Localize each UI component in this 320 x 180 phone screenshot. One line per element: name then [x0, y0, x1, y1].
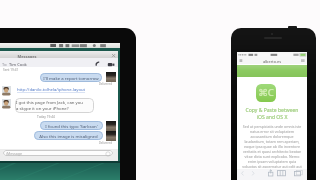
- staticText: Today 19:44: [31, 115, 61, 121]
- staticText: http://danilo.tolhela/iphone-layout: [17, 87, 91, 93]
- staticText: ⌘C: [256, 86, 276, 98]
- staticText: alberto.es: [252, 59, 292, 67]
- staticText: To:: [2, 62, 10, 70]
- button[interactable]: [3, 150, 113, 156]
- staticText: Delivered: [96, 141, 112, 147]
- button[interactable]: [40, 121, 103, 130]
- staticText: Copy & Paste between iOS and OS X: [241, 107, 303, 122]
- staticText: Sed ut perspiciatis unde omnis iste natu…: [241, 124, 303, 168]
- button[interactable]: [15, 98, 94, 113]
- staticText: Messages: [11, 54, 43, 62]
- button[interactable]: [40, 73, 102, 82]
- button[interactable]: [34, 131, 103, 140]
- other: Reload page: [237, 58, 307, 63]
- staticText: Sent 19:41: [3, 68, 27, 74]
- staticText: Delivered: [96, 82, 112, 88]
- staticText: Also this image is misaligned: [36, 133, 101, 139]
- button[interactable]: Browser toolbar: [237, 169, 307, 180]
- staticText: I got this page from Jack, can you a sky…: [16, 99, 94, 111]
- button[interactable]: Call: [94, 62, 118, 68]
- staticText: I'll make a report tomorrow: [42, 75, 100, 81]
- staticText: Tim Cook: [9, 62, 39, 70]
- staticText: iMessage: [6, 151, 36, 158]
- button[interactable]: [256, 84, 276, 102]
- staticText: I found this typo 'Sarkson': [42, 123, 101, 129]
